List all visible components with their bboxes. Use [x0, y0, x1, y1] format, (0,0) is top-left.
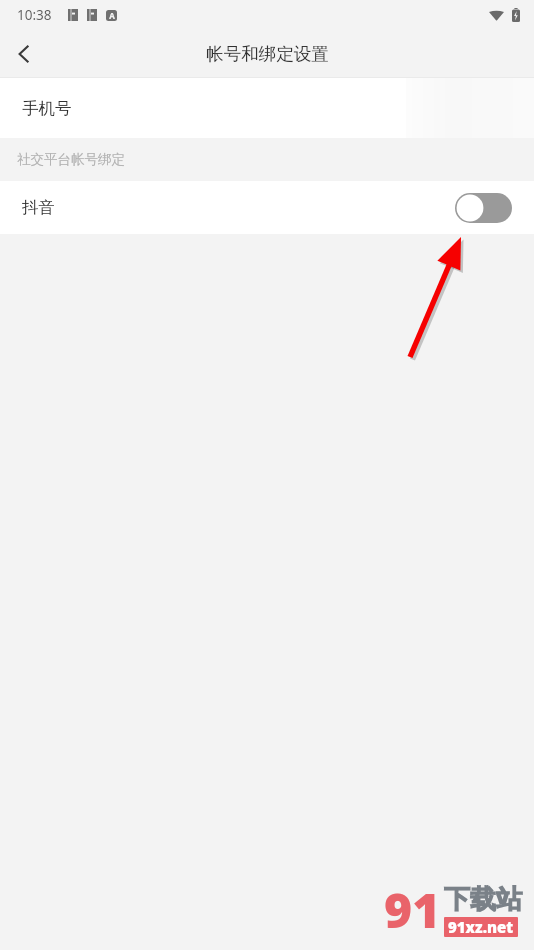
button[interactable]: 抖音 binding toggle, off — [455, 193, 512, 223]
button[interactable]: 抖音 — [0, 181, 534, 234]
button[interactable]: 手机号 — [0, 78, 534, 138]
staticText: 抖音 — [22, 197, 55, 218]
staticText: 下载站 — [444, 883, 522, 916]
button[interactable]: Back — [0, 30, 48, 78]
staticText: A — [109, 10, 115, 21]
staticText: 10:38 — [17, 6, 52, 24]
staticText: 手机号 — [22, 98, 72, 119]
staticText: 社交平台帐号绑定 — [17, 151, 125, 168]
staticText: 91xz.net — [448, 917, 514, 937]
staticText: 91 — [384, 877, 441, 942]
staticText: 帐号和绑定设置 — [206, 43, 329, 65]
